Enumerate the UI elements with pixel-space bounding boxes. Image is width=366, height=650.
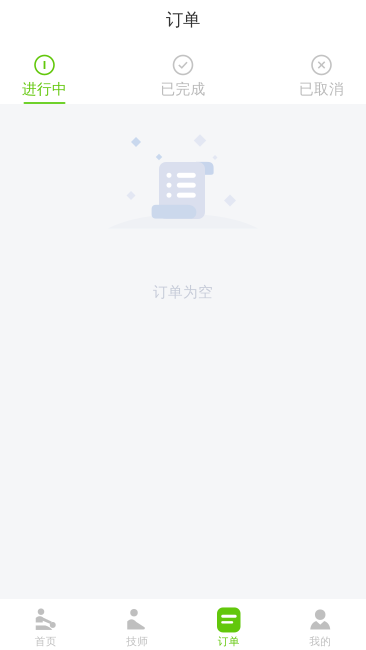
button[interactable]: 已取消 [291, 46, 351, 104]
button[interactable]: 技师 [91, 599, 183, 650]
staticText: 进行中 [22, 80, 67, 98]
staticText: 订单为空 [153, 283, 213, 301]
staticText: 技师 [126, 635, 148, 648]
button[interactable]: 我的 [274, 599, 366, 650]
button[interactable]: 已完成 [153, 46, 213, 104]
staticText: 已完成 [160, 80, 205, 98]
staticText: 已取消 [299, 80, 344, 98]
button[interactable]: 进行中 [14, 46, 74, 104]
button[interactable]: 订单 [183, 599, 274, 650]
staticText: 我的 [309, 635, 331, 648]
staticText: 首页 [35, 635, 57, 648]
button[interactable]: 首页 [0, 599, 91, 650]
staticText: 订单 [218, 635, 240, 648]
staticText: 订单 [166, 9, 200, 30]
